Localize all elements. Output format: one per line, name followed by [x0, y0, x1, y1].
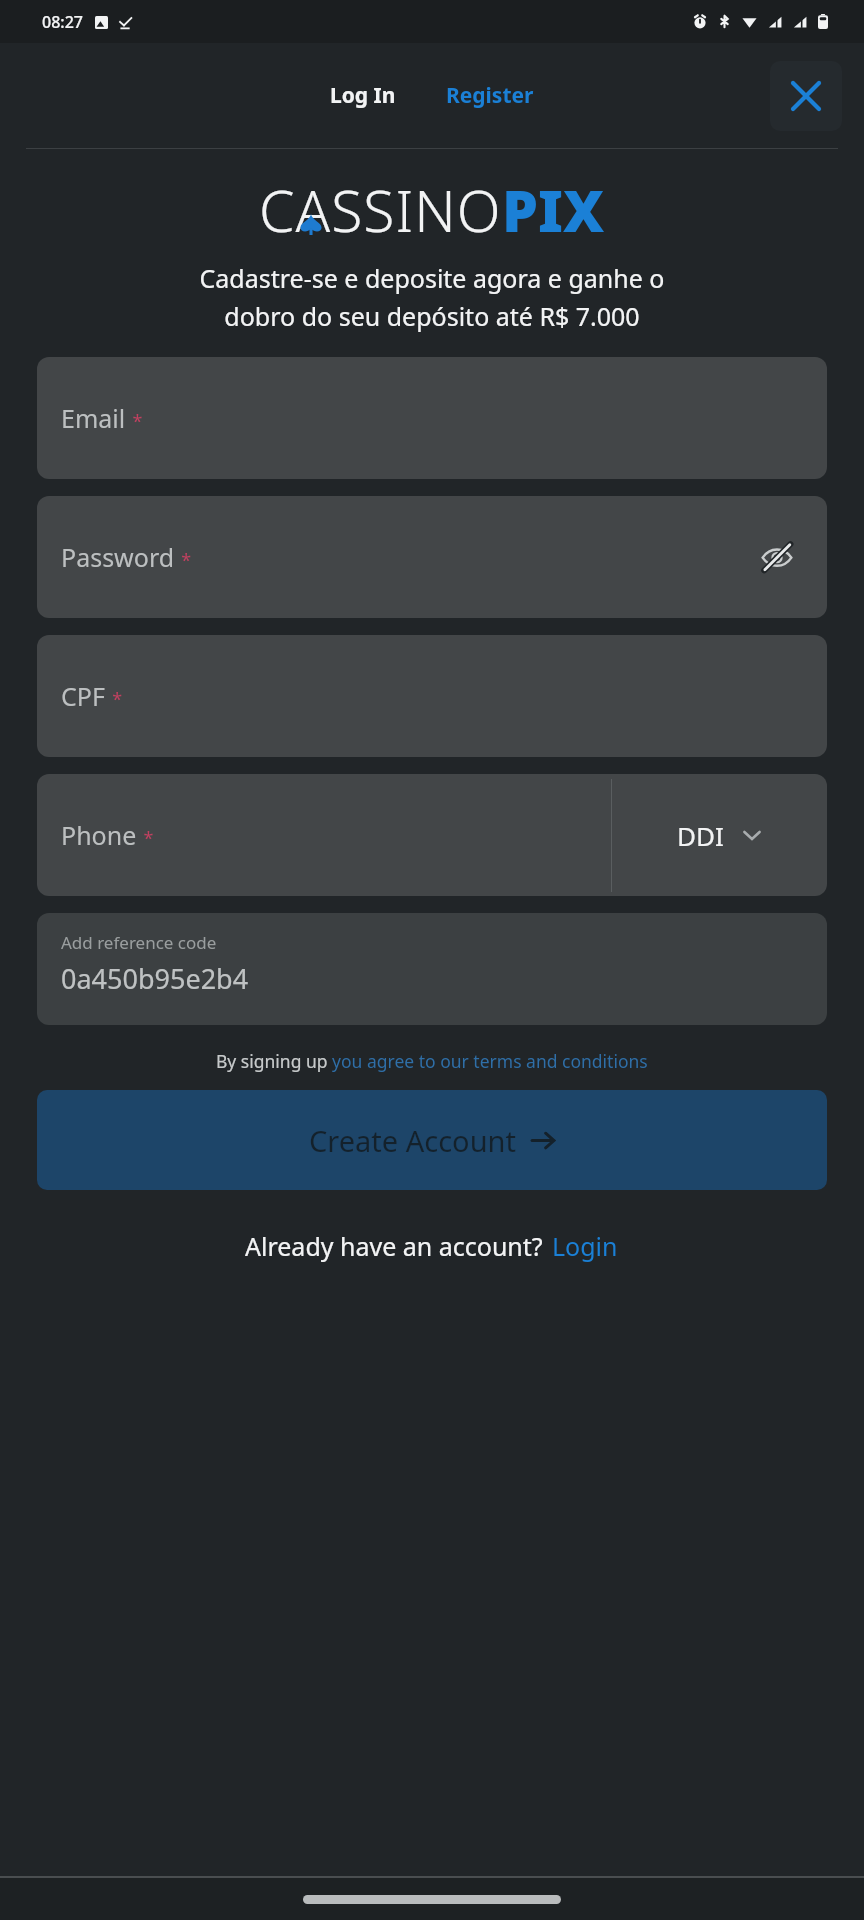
staticText: 08:27 — [42, 11, 83, 33]
button[interactable]: DDI — [612, 774, 827, 896]
staticText: Add reference code — [61, 931, 217, 954]
staticText: Create Account — [309, 1121, 516, 1160]
button[interactable]: Add reference code — [37, 913, 827, 1025]
staticText: PIX — [502, 171, 605, 241]
button[interactable]: Create Account — [37, 1090, 827, 1190]
staticText: Log In — [330, 81, 396, 110]
staticText: Password * — [61, 540, 192, 574]
staticText: Email * — [61, 401, 143, 435]
staticText: 0a450b95e2b4 — [61, 960, 249, 997]
staticText: By signing up you agree to our terms and… — [216, 1049, 648, 1073]
button[interactable]: Close — [770, 61, 842, 131]
button[interactable]: Show password — [753, 533, 801, 581]
button[interactable]: CPF * — [37, 635, 827, 757]
staticText: DDI — [677, 818, 724, 853]
button[interactable]: Login — [550, 1226, 620, 1266]
staticText: CPF * — [61, 679, 123, 713]
button[interactable]: Log In — [320, 73, 406, 118]
button[interactable]: Password * — [37, 496, 827, 618]
staticText: Register — [446, 81, 534, 110]
staticText: Login — [552, 1229, 618, 1263]
button[interactable]: Register — [436, 73, 544, 118]
button[interactable]: Email * — [37, 357, 827, 479]
staticText: CASSINO — [259, 171, 502, 241]
button[interactable]: By signing up you agree to our terms and… — [210, 1045, 654, 1077]
staticText: Cadastre-se e deposite agora e ganhe o d… — [40, 261, 824, 333]
button[interactable]: Phone * — [37, 774, 611, 896]
staticText: Phone * — [61, 818, 154, 852]
staticText: Already have an account? — [245, 1229, 550, 1263]
